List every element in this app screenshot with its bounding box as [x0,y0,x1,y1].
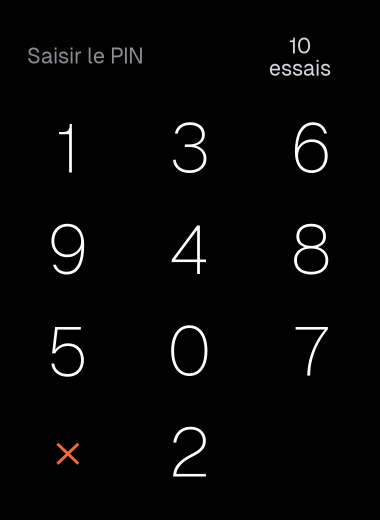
staticText: 5 [47,307,89,395]
button[interactable]: 5 [7,300,129,401]
button[interactable]: Delete [7,401,129,503]
button[interactable]: 3 [129,97,250,198]
staticText: 8 [291,205,332,293]
staticText: 7 [294,307,328,395]
button[interactable]: 6 [250,97,372,198]
staticText: 6 [290,104,332,192]
staticText: 0 [167,307,211,395]
staticText: 3 [169,104,210,192]
button[interactable]: 2 [129,401,250,503]
staticText: Saisir le PIN [27,42,144,70]
staticText: essais [269,54,331,82]
button[interactable]: 0 [129,300,250,401]
staticText: 2 [168,408,210,496]
button[interactable]: 1 [7,97,129,198]
staticText: 1 [56,104,80,192]
button[interactable]: 9 [7,198,129,300]
button[interactable]: 4 [129,198,250,300]
staticText: 10 [289,32,311,60]
staticText: 4 [169,205,210,293]
button[interactable]: 7 [250,300,372,401]
staticText: 9 [47,205,89,293]
button[interactable]: 8 [250,198,372,300]
